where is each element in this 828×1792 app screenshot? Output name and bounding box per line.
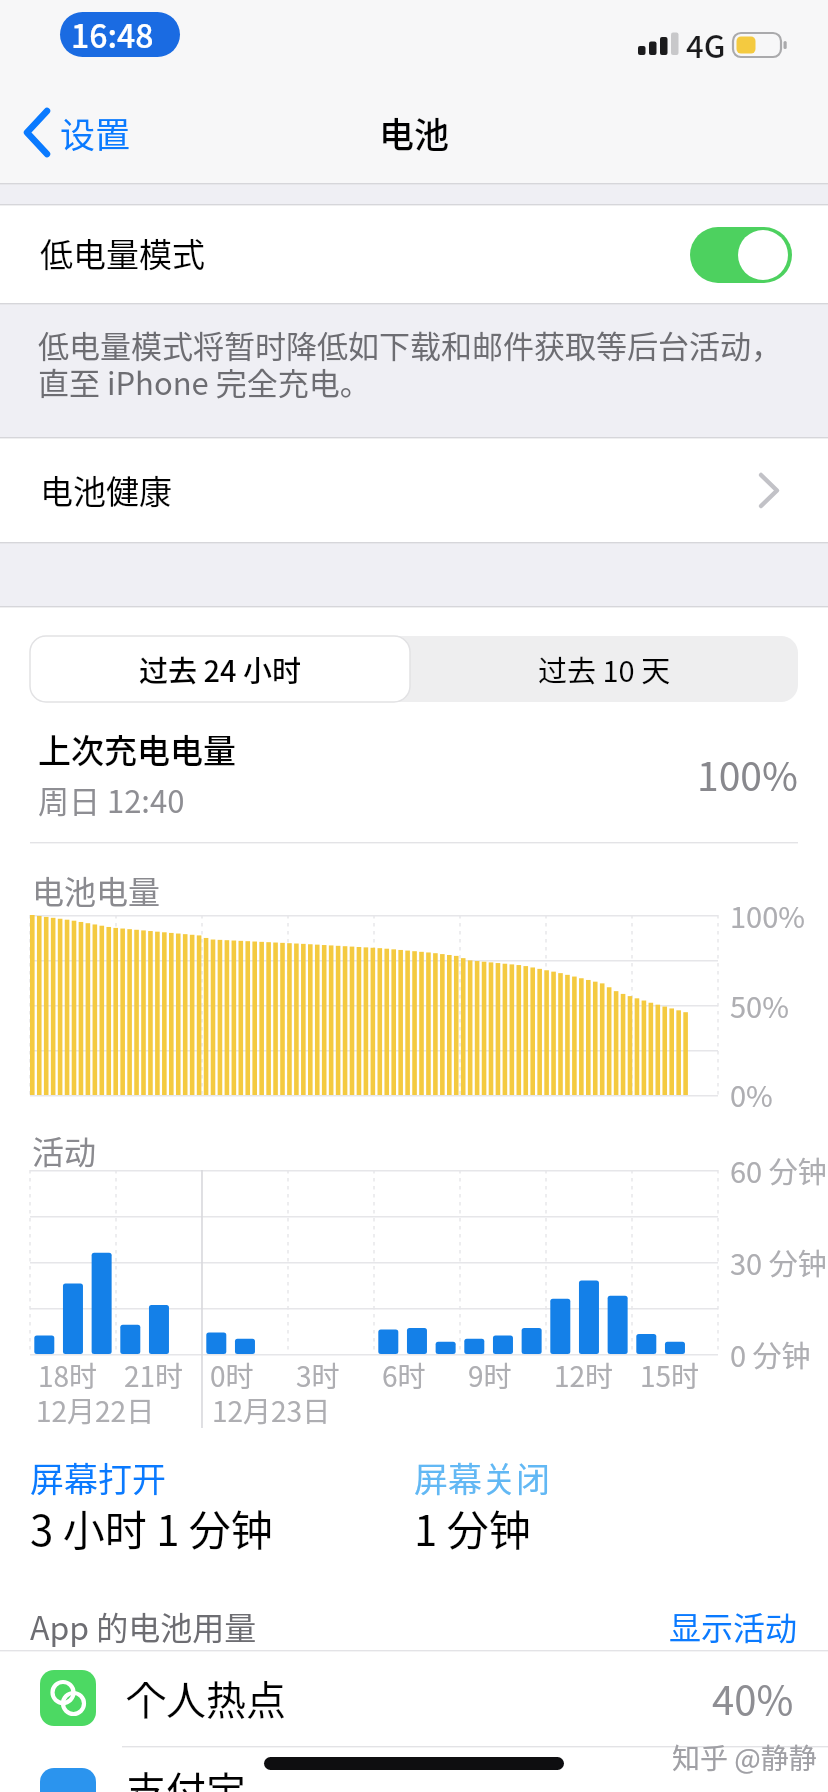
staticText: 100% [697,746,798,802]
staticText: 周日 12:40 [38,777,185,822]
button[interactable] [0,1652,828,1746]
staticText: 9时 [468,1355,512,1396]
staticText: 过去 24 小时 [139,648,302,690]
staticText: 电池健康 [40,466,172,514]
button[interactable] [30,636,410,702]
staticText: 电池电量 [32,867,161,913]
staticText: 设置 [60,107,131,158]
staticText: 21时 [124,1355,184,1396]
staticText: 过去 10 天 [538,648,671,690]
button[interactable] [640,1600,800,1652]
staticText: 60 分钟 [730,1149,827,1191]
staticText: 30 分钟 [730,1241,827,1283]
staticText: 屏幕关闭 [414,1453,550,1502]
staticText: 个人热点 [126,1669,286,1727]
staticText: 3时 [296,1355,340,1396]
button[interactable] [0,205,828,302]
button[interactable] [10,100,160,166]
staticText: 50% [730,984,789,1026]
staticText: 低电量模式 [40,229,205,277]
staticText: 12月23日 [212,1390,331,1431]
staticText: 100% [730,894,805,936]
staticText: 显示活动 [669,1603,798,1649]
staticText: 18时 [38,1355,98,1396]
staticText: 40% [712,1669,794,1727]
staticText: 支付宝 [126,1760,246,1792]
staticText: 0% [730,1073,773,1115]
staticText: 6时 [382,1355,426,1396]
staticText: 0时 [210,1355,254,1396]
staticText: 低电量模式将暂时降低如下载和邮件获取等后台活动， [38,322,782,367]
staticText: 电池 [379,107,450,158]
button[interactable] [0,437,828,542]
staticText: 活动 [32,1127,97,1173]
staticText: 15时 [640,1355,700,1396]
staticText: 直至 iPhone 完全充电。 [38,359,371,404]
button[interactable] [0,1748,828,1792]
staticText: 16:48 [71,11,154,57]
staticText: 屏幕打开 [30,1453,166,1502]
staticText: 上次充电电量 [38,725,236,773]
staticText: 1 分钟 [414,1497,531,1558]
staticText: 12月22日 [36,1390,155,1431]
staticText: 3 小时 1 分钟 [30,1497,273,1558]
button[interactable] [410,636,798,702]
staticText: 12时 [554,1355,614,1396]
staticText: 4G [686,22,726,67]
staticText: 知乎 @静静 [672,1737,817,1778]
staticText: 0 分钟 [730,1333,811,1375]
staticText: App 的电池用量 [30,1603,257,1649]
